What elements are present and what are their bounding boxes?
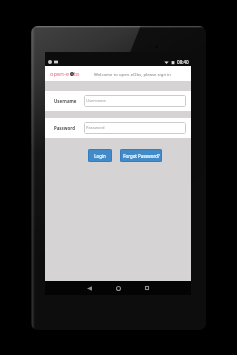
staticText: Password bbox=[86, 125, 105, 131]
staticText: open-e bbox=[50, 70, 70, 78]
button[interactable]: Recent apps bbox=[140, 281, 154, 295]
button[interactable]: Forgot Password? bbox=[120, 149, 162, 162]
staticText: Password bbox=[54, 125, 75, 131]
button[interactable]: Username bbox=[84, 95, 186, 107]
staticText: Welcome to open-eObs, please sign in bbox=[94, 71, 171, 77]
staticText: bs bbox=[74, 71, 80, 78]
staticText: Username bbox=[86, 98, 106, 104]
button[interactable]: Back bbox=[82, 281, 96, 295]
button[interactable]: Home bbox=[111, 281, 125, 295]
button[interactable]: Password bbox=[84, 122, 186, 134]
staticText: 08:40 bbox=[177, 59, 189, 65]
staticText: Login bbox=[94, 153, 106, 159]
staticText: Forgot Password? bbox=[123, 153, 160, 159]
staticText: Username bbox=[54, 98, 77, 104]
button[interactable]: Login bbox=[88, 149, 112, 162]
